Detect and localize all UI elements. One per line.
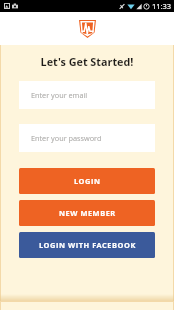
staticText: NEW MEMBER <box>59 208 116 218</box>
button[interactable]: Enter your email <box>19 81 155 109</box>
staticText: Enter your password <box>31 133 102 143</box>
staticText: LOGIN <box>74 176 101 186</box>
staticText: 11:33 <box>152 1 172 11</box>
staticText: LOGIN WITH FACEBOOK <box>39 240 136 250</box>
button[interactable]: Enter your password <box>19 124 155 152</box>
button[interactable]: LOGIN <box>19 168 155 194</box>
button[interactable]: App logo <box>79 20 96 38</box>
button[interactable]: NEW MEMBER <box>19 200 155 226</box>
button[interactable]: LOGIN WITH FACEBOOK <box>19 232 155 258</box>
staticText: Enter your email <box>31 90 88 100</box>
staticText: Let's Get Started! <box>0 54 174 69</box>
